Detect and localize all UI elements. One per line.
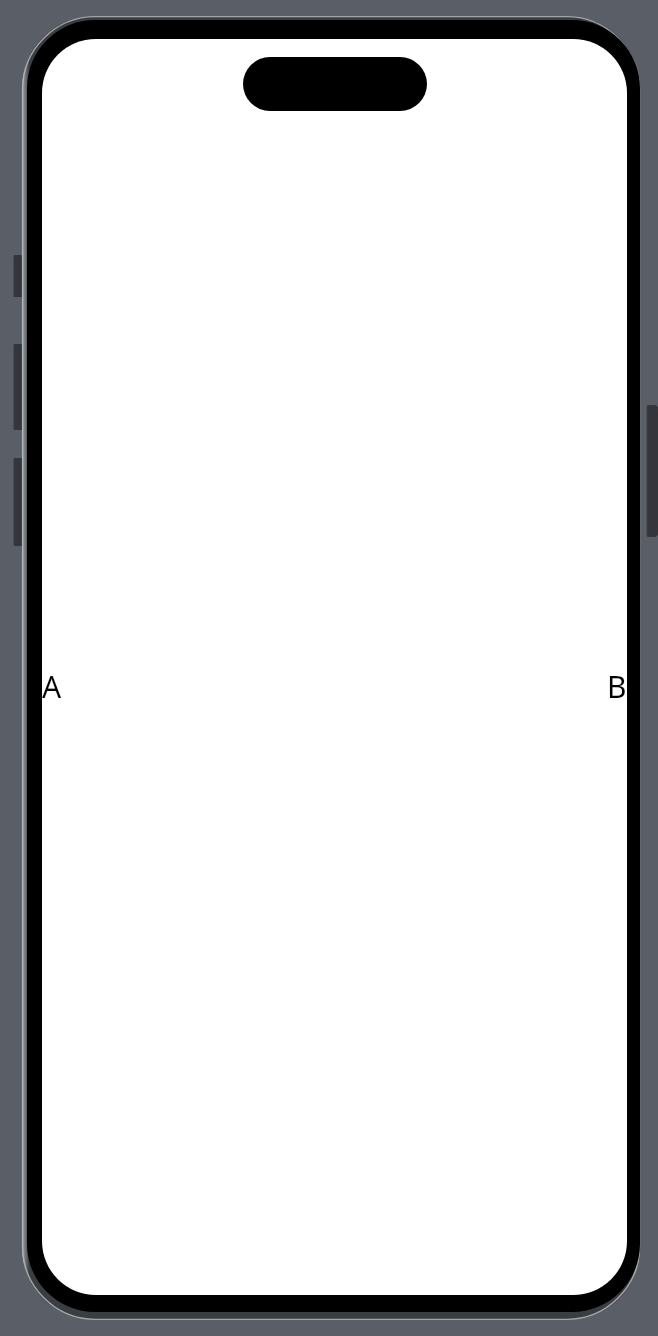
button[interactable]: Power (645, 405, 658, 537)
button[interactable]: Ring silent switch (12, 255, 24, 297)
other: Dynamic Island (243, 57, 427, 111)
button[interactable]: B (607, 666, 627, 707)
button[interactable]: Volume up (12, 344, 24, 430)
button[interactable]: A (42, 666, 62, 707)
button[interactable]: Volume down (12, 458, 24, 546)
